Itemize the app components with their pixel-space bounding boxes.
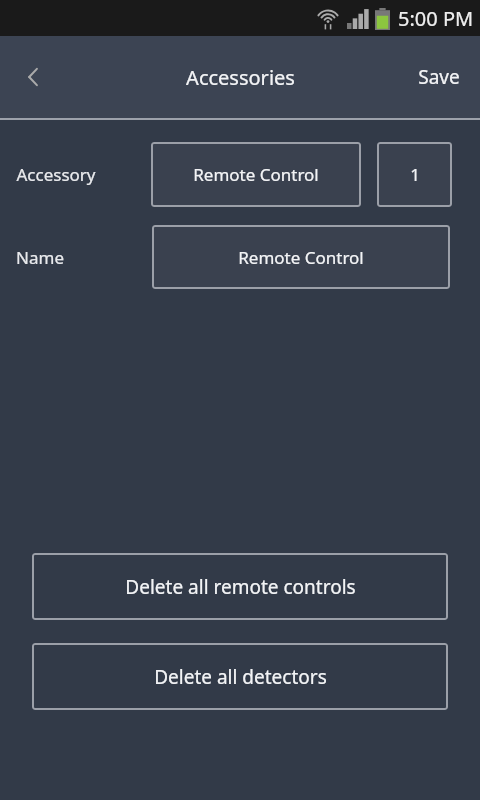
staticText: Remote Control <box>193 163 319 186</box>
button[interactable]: Remote Control <box>152 225 450 289</box>
button[interactable]: 1 <box>377 142 452 207</box>
staticText: Save <box>418 64 460 90</box>
staticText: 5:00 PM <box>398 5 474 32</box>
button[interactable]: Back <box>10 53 58 101</box>
button[interactable]: Delete all remote controls <box>32 553 448 620</box>
staticText: Name <box>16 246 64 269</box>
staticText: Accessories <box>186 64 295 91</box>
staticText: Delete all detectors <box>154 664 327 690</box>
staticText: Remote Control <box>238 246 364 269</box>
staticText: Delete all remote controls <box>125 574 356 600</box>
staticText: 1 <box>410 163 420 186</box>
button[interactable]: Delete all detectors <box>32 643 448 710</box>
button[interactable]: Save <box>398 36 480 118</box>
button[interactable]: Remote Control <box>151 142 361 207</box>
staticText: Accessory <box>16 163 96 186</box>
